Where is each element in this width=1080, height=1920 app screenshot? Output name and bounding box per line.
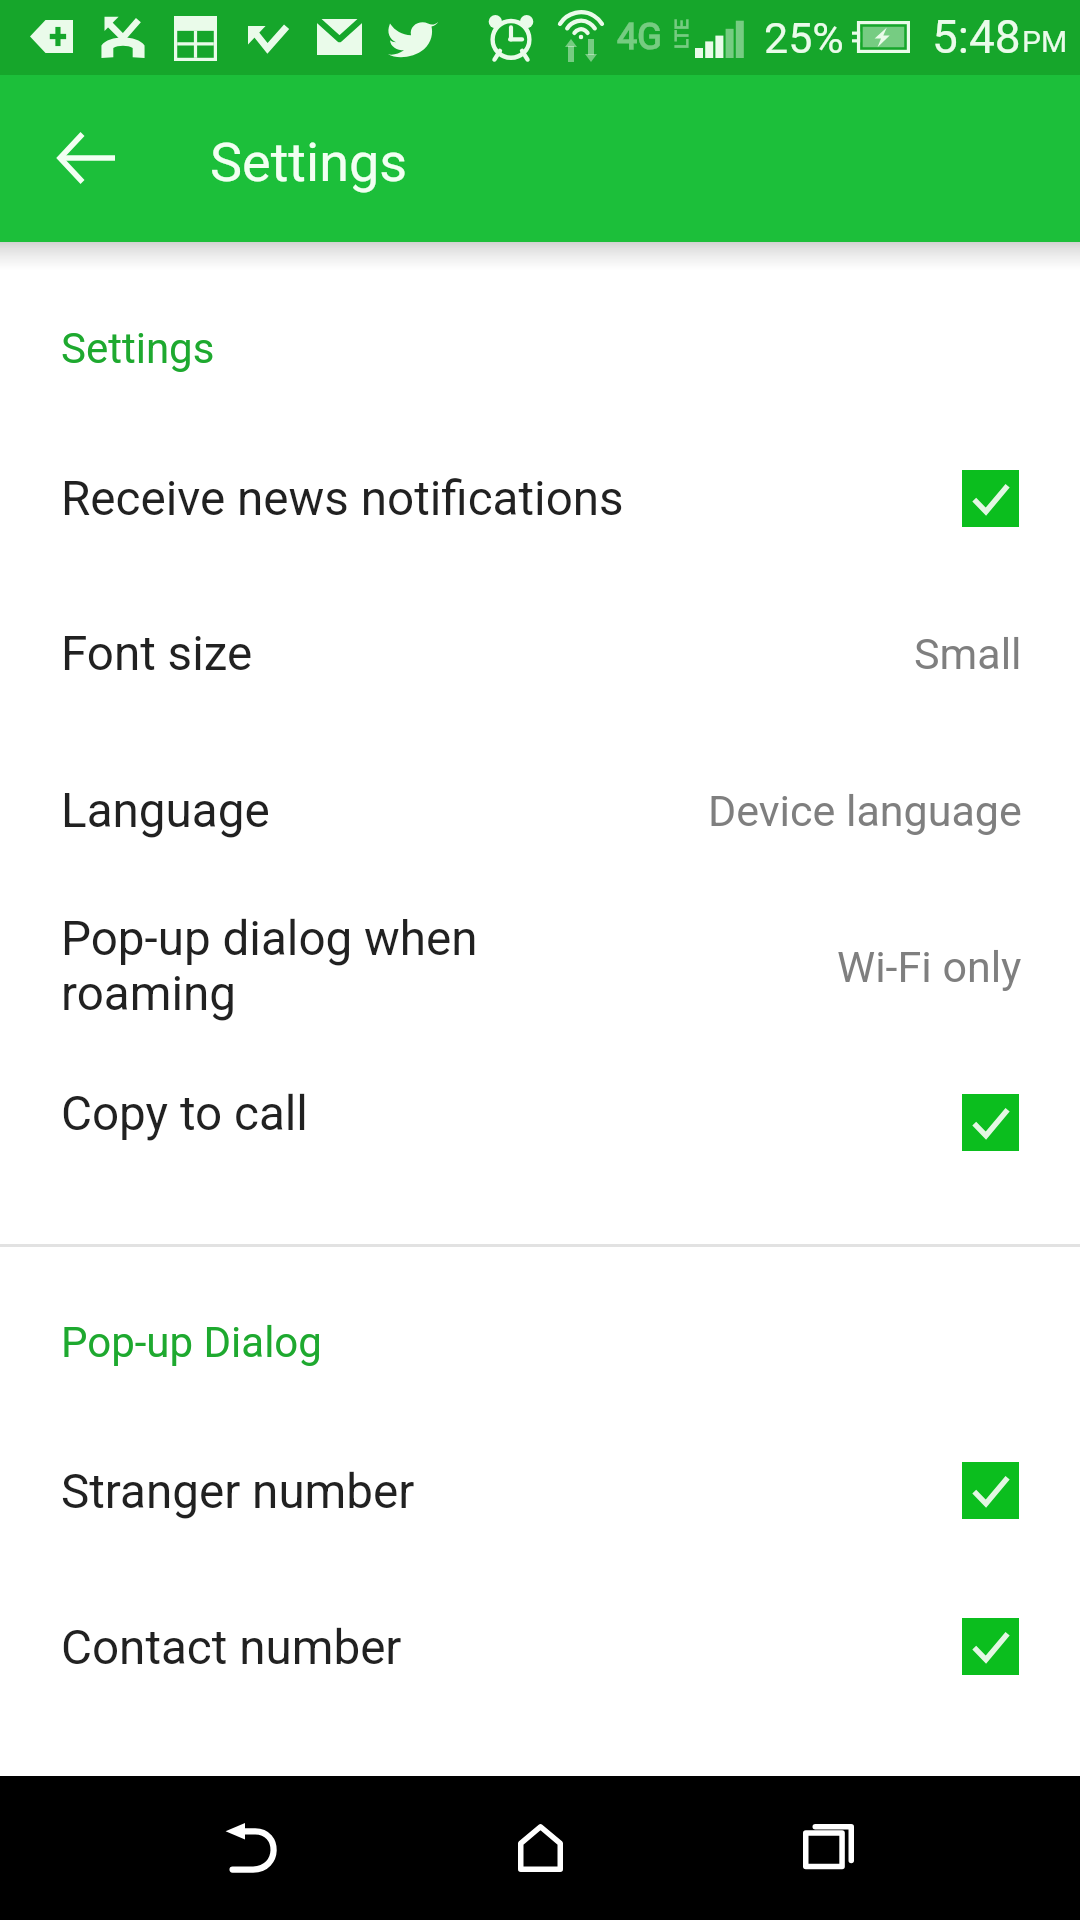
button[interactable]: Copy to call	[0, 1085, 1080, 1235]
staticText: Wi-Fi only	[837, 942, 1022, 992]
button[interactable]: Home	[468, 1776, 612, 1920]
staticText: Settings	[210, 131, 408, 194]
staticText: Stranger number	[61, 1464, 415, 1520]
button[interactable]: Receive news notifications	[0, 418, 1080, 578]
staticText: Copy to call	[61, 1086, 308, 1142]
staticText: 4G	[617, 16, 662, 58]
staticText: Settings	[61, 324, 215, 373]
staticText: Small	[914, 629, 1022, 679]
staticText: Contact number	[61, 1620, 402, 1676]
button[interactable]: Language	[0, 745, 1080, 885]
staticText: Pop-up Dialog	[61, 1318, 322, 1367]
button[interactable]: Back	[40, 111, 134, 205]
staticText: Receive news notifications	[61, 471, 624, 527]
button[interactable]: Contact number	[0, 1575, 1080, 1735]
staticText: Language	[61, 783, 270, 839]
staticText: Pop-up dialog when	[61, 911, 478, 967]
button[interactable]: Back	[180, 1776, 324, 1920]
button[interactable]: Pop-up dialog when	[0, 895, 1080, 1075]
button[interactable]: Font size	[0, 590, 1080, 730]
staticText: PM	[1022, 24, 1068, 59]
staticText: 5:48	[932, 10, 1021, 64]
staticText: Font size	[61, 626, 253, 682]
button[interactable]: Stranger number	[0, 1415, 1080, 1575]
staticText: LTE	[670, 19, 692, 49]
staticText: Device language	[708, 786, 1022, 836]
staticText: 25%	[764, 13, 844, 63]
button[interactable]: Recent apps	[756, 1776, 900, 1920]
staticText: roaming	[61, 966, 237, 1022]
